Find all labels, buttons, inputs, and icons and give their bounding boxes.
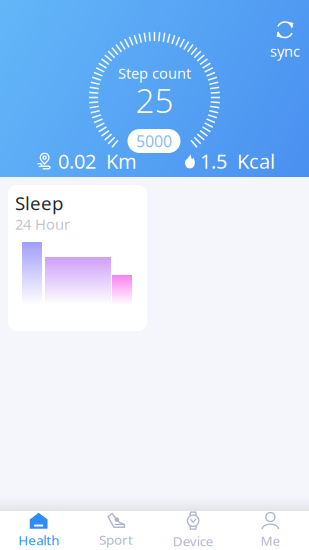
staticText: Step count	[118, 63, 191, 83]
button[interactable]: Sleep	[8, 185, 147, 331]
button[interactable]: Sync	[263, 19, 307, 61]
staticText: 25	[135, 78, 173, 122]
staticText: Sport	[99, 531, 133, 548]
staticText: 5000	[136, 130, 172, 152]
button[interactable]: Sport	[77, 511, 154, 550]
staticText: 0.02 Km	[58, 148, 137, 174]
staticText: 24 Hour	[15, 214, 70, 234]
button[interactable]: Me	[232, 511, 309, 550]
staticText: sync	[270, 41, 300, 61]
staticText: 1.5 Kcal	[200, 148, 275, 174]
staticText: Me	[260, 532, 280, 549]
staticText: Health	[18, 531, 59, 549]
staticText: Sleep	[15, 191, 63, 215]
button[interactable]: Device	[154, 511, 232, 550]
button[interactable]: Health	[0, 511, 77, 550]
staticText: Device	[173, 532, 214, 550]
